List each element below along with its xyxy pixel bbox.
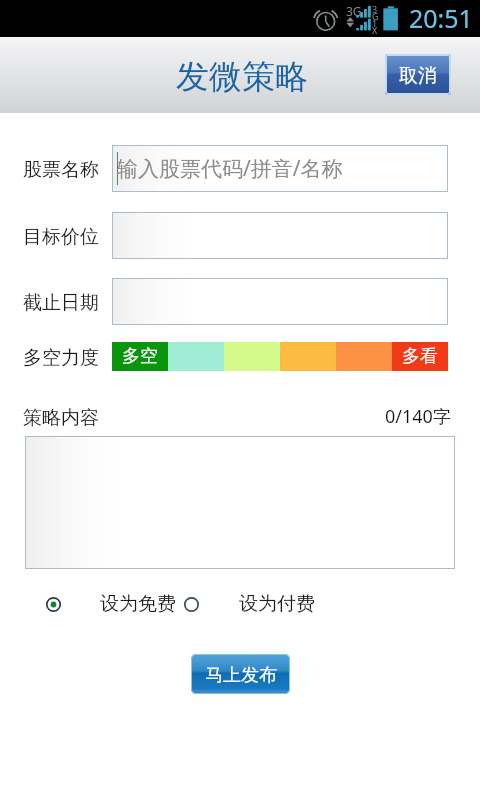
staticText: 股票名称 (23, 158, 99, 182)
button[interactable] (112, 278, 448, 325)
staticText: 20:51 (409, 1, 473, 35)
button[interactable]: 输入股票代码/拼音/名称 (112, 145, 448, 192)
button[interactable] (25, 436, 455, 569)
staticText: 马上发布 (205, 664, 277, 687)
staticText: 设为付费 (239, 592, 315, 616)
button[interactable]: 多空 (112, 342, 448, 371)
staticText: 取消 (399, 64, 437, 88)
staticText: 设为免费 (100, 592, 176, 616)
button[interactable]: 马上发布 (191, 654, 290, 694)
button[interactable]: 设为免费 (45, 590, 176, 618)
staticText: 多看 (402, 345, 438, 368)
staticText: 3G (346, 3, 362, 19)
staticText: 1 (372, 17, 378, 29)
button[interactable] (112, 212, 448, 259)
staticText: 输入股票代码/拼音/名称 (117, 154, 343, 183)
staticText: 策略内容 (23, 406, 99, 430)
staticText: 0/140字 (385, 404, 451, 429)
staticText: X (372, 24, 378, 36)
staticText: 多空力度 (23, 346, 99, 370)
button[interactable]: 设为付费 (183, 590, 315, 618)
button[interactable]: 取消 (385, 54, 451, 95)
staticText: G (372, 10, 379, 22)
staticText: 3 (372, 3, 378, 15)
staticText: 截止日期 (23, 291, 99, 315)
staticText: 目标价位 (23, 225, 99, 249)
staticText: 多空 (122, 345, 158, 368)
staticText: 发微策略 (176, 56, 308, 98)
